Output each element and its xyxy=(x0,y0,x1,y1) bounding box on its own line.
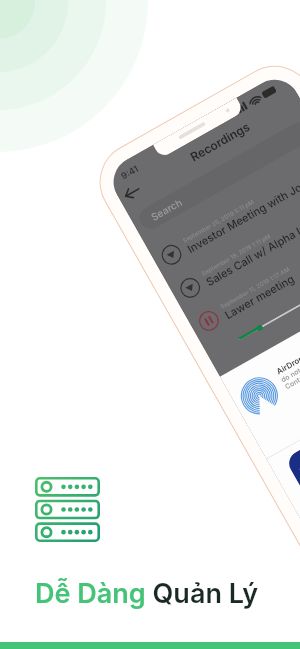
staticText: Sales Call w/ Alpha Inc xyxy=(203,218,300,288)
staticText: Investor Meeting with John xyxy=(185,173,300,255)
staticText: September 18, 2019 1:11 pM xyxy=(200,232,272,277)
button[interactable]: September 25, 2019 5:11 pM xyxy=(155,148,300,274)
staticText: do not share xyxy=(279,356,300,383)
staticText: Recordings xyxy=(188,119,252,164)
staticText: AirDrop. xyxy=(274,351,300,376)
staticText: Search xyxy=(149,196,184,223)
button[interactable]: Back xyxy=(121,182,143,203)
button[interactable]: September 11, 2019 1:17 AM xyxy=(192,214,300,340)
button[interactable]: Dropbox xyxy=(284,437,300,497)
staticText: Contacts xyxy=(283,368,300,390)
staticText: 9:41 xyxy=(119,163,141,181)
staticText: Dễ Dàng Quản Lý xyxy=(35,577,259,610)
staticText: September 11, 2019 1:17 AM xyxy=(219,265,291,310)
staticText: September 25, 2019 5:11 pM xyxy=(181,198,255,244)
button[interactable]: Search xyxy=(135,118,300,233)
button[interactable]: September 18, 2019 1:11 pM xyxy=(174,181,300,307)
staticText: Lawer meeting xyxy=(222,271,296,321)
